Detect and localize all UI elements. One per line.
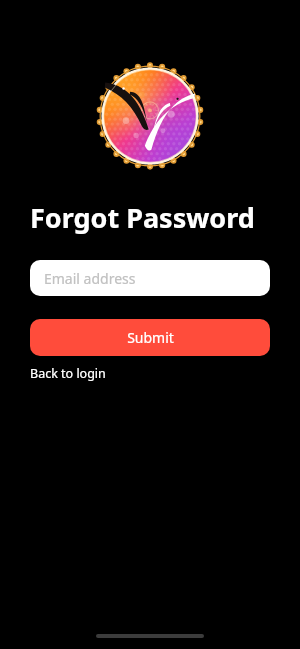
- button[interactable]: Back to login: [30, 365, 106, 382]
- button[interactable]: Email address: [30, 260, 270, 296]
- staticText: Submit: [127, 328, 174, 347]
- button[interactable]: Submit: [30, 319, 270, 356]
- staticText: Back to login: [30, 365, 106, 382]
- staticText: Forgot Password: [30, 199, 255, 236]
- staticText: Email address: [44, 269, 136, 288]
- other: App logo: [94, 60, 206, 172]
